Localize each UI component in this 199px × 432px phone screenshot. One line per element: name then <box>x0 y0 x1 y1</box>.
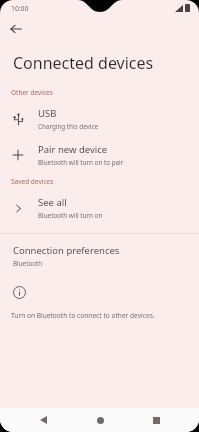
other: Pair new device <box>8 145 28 165</box>
button[interactable]: See all <box>0 190 199 226</box>
button[interactable]: Back <box>30 408 56 432</box>
button[interactable]: USB <box>0 101 199 137</box>
button[interactable]: Pair new device <box>0 137 199 173</box>
other: USB <box>8 109 28 129</box>
staticText: See all <box>38 196 67 209</box>
staticText: Connection preferences <box>13 244 120 257</box>
staticText: Pair new device <box>38 143 108 156</box>
staticText: 10:00 <box>11 4 29 13</box>
staticText: Bluetooth will turn on <box>38 211 103 220</box>
staticText: Bluetooth will turn on to pair <box>38 158 124 167</box>
button[interactable]: Recent apps <box>143 408 169 432</box>
staticText: Other devices <box>11 88 53 97</box>
staticText: Bluetooth <box>13 259 43 268</box>
staticText: Charging this device <box>38 122 98 131</box>
staticText: Connected devices <box>13 52 154 74</box>
other: Information <box>11 284 27 300</box>
staticText: Turn on Bluetooth to connect to other de… <box>11 311 155 320</box>
button[interactable]: Navigate up <box>5 18 27 40</box>
button[interactable]: Home <box>87 408 113 432</box>
button[interactable]: Connection preferences <box>0 234 199 274</box>
other: See all <box>8 198 28 218</box>
staticText: USB <box>38 107 57 120</box>
staticText: Saved devices <box>11 177 54 186</box>
